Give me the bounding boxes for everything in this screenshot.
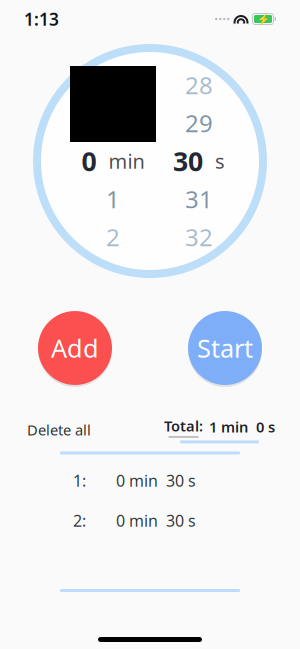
staticText: 29 xyxy=(185,107,213,139)
staticText: 0 min 30 s xyxy=(116,470,196,491)
button[interactable]: Add xyxy=(35,308,115,388)
staticText: 28 xyxy=(185,69,213,101)
button[interactable]: 1: xyxy=(0,460,300,500)
button[interactable]: Start xyxy=(185,308,265,388)
staticText: 32 xyxy=(185,221,213,253)
staticText: 1: xyxy=(73,470,86,491)
staticText: 0 xyxy=(81,143,96,179)
staticText: Add xyxy=(51,331,99,365)
staticText: ⚡ xyxy=(256,13,269,25)
staticText: 1 min 0 s xyxy=(209,417,275,436)
staticText: 31 xyxy=(185,183,213,215)
staticText: s xyxy=(215,148,225,174)
staticText: 2 xyxy=(106,221,120,253)
staticText: min xyxy=(108,148,144,174)
staticText: 1:13 xyxy=(24,7,59,30)
staticText: Start xyxy=(197,331,253,365)
staticText: Total: xyxy=(164,416,203,436)
staticText: 2: xyxy=(73,510,86,531)
button[interactable]: Delete all xyxy=(25,416,93,443)
staticText: 0 min 30 s xyxy=(116,510,196,531)
button[interactable]: 2: xyxy=(0,500,300,540)
staticText: Delete all xyxy=(27,420,91,439)
staticText: 30 xyxy=(173,143,203,179)
staticText: 1 xyxy=(106,183,120,215)
